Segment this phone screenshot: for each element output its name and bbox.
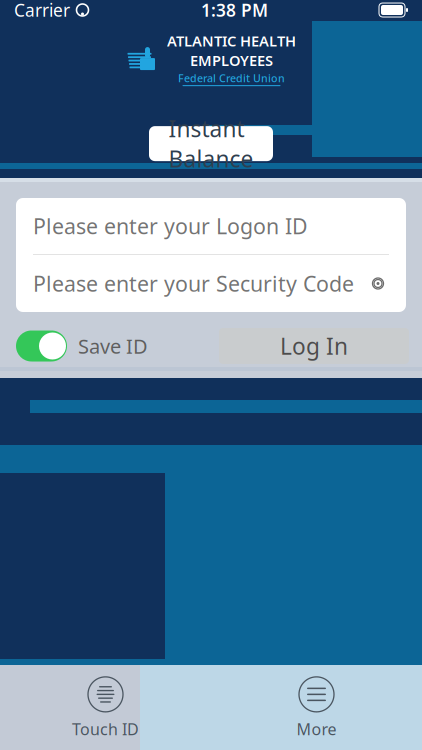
staticText: Log In: [280, 331, 348, 361]
staticText: Federal Credit Union: [178, 71, 285, 85]
button[interactable]: Save ID: [16, 330, 148, 361]
staticText: Carrier: [14, 0, 70, 21]
staticText: EMPLOYEES: [190, 50, 273, 70]
staticText: Instant Balance: [168, 113, 253, 174]
button[interactable]: Please enter your Security Code: [16, 255, 406, 312]
staticText: 1:38 PM: [201, 0, 268, 21]
button[interactable]: Please enter your Logon ID: [16, 198, 406, 254]
button[interactable]: Log In: [219, 328, 409, 364]
staticText: ATLANTIC HEALTH: [167, 31, 296, 50]
staticText: Save ID: [78, 333, 148, 359]
button[interactable]: Instant Balance: [149, 126, 273, 161]
staticText: Touch ID: [72, 718, 139, 740]
staticText: Please enter your Security Code: [33, 269, 354, 298]
staticText: More: [296, 718, 336, 740]
button[interactable]: More: [211, 665, 422, 750]
staticText: Please enter your Logon ID: [33, 212, 308, 240]
button[interactable]: Touch ID: [0, 665, 211, 750]
